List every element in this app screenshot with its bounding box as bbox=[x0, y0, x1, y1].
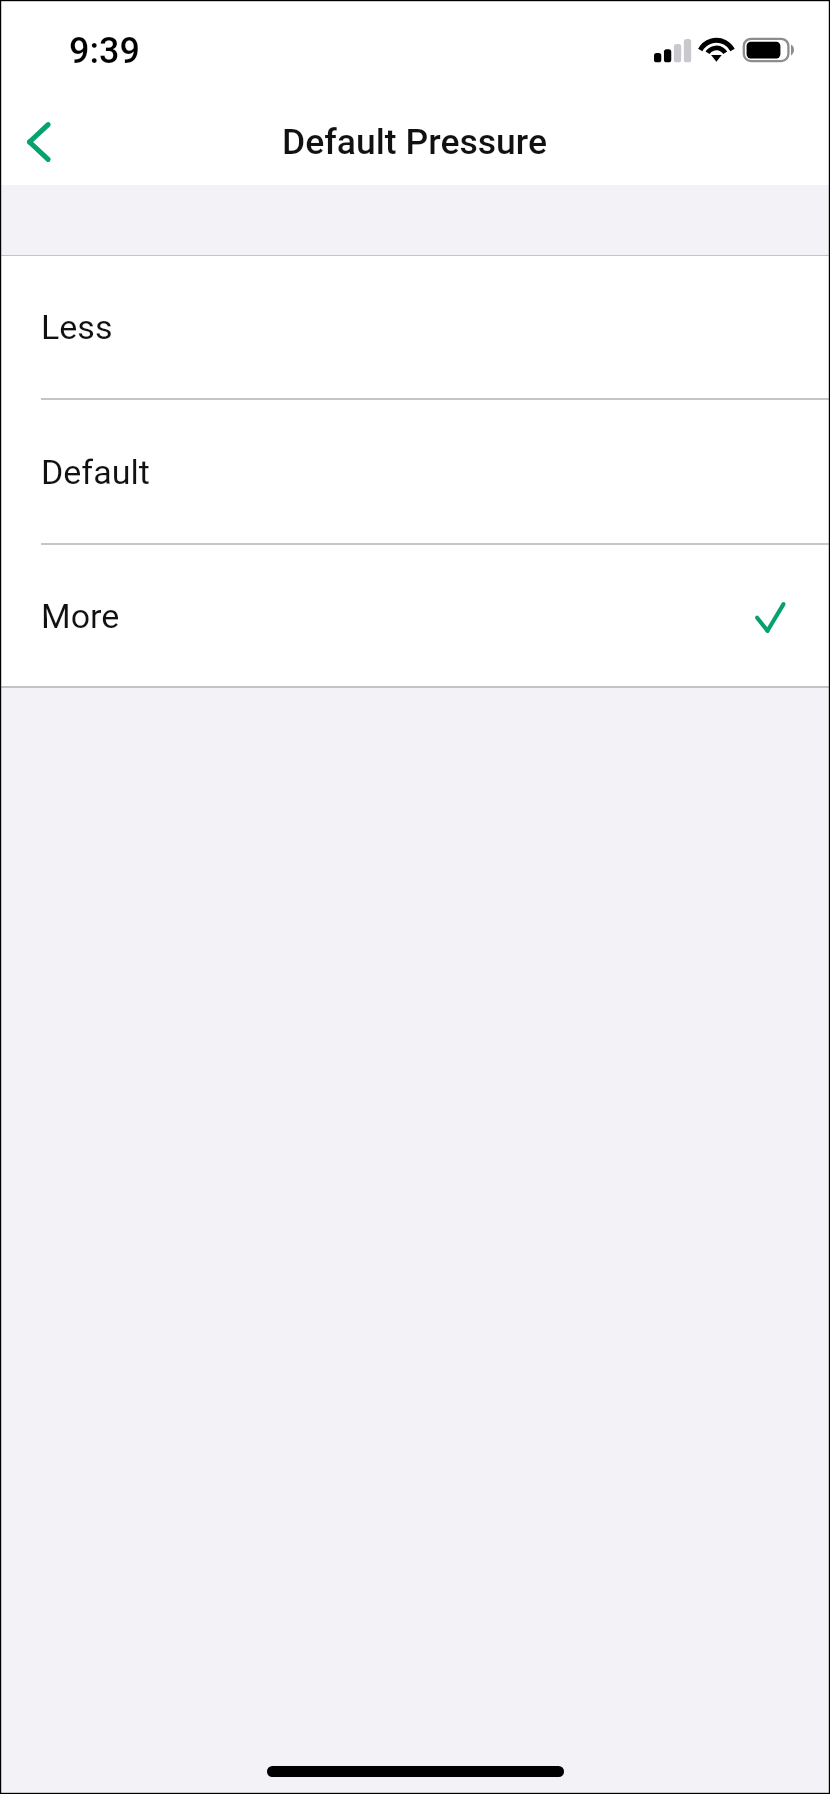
button[interactable]: Less bbox=[0, 256, 830, 398]
button[interactable]: Back bbox=[2, 87, 76, 183]
staticText: Default Pressure bbox=[282, 121, 548, 163]
staticText: Less bbox=[41, 307, 113, 347]
staticText: 9:39 bbox=[69, 30, 140, 72]
staticText: More bbox=[41, 596, 120, 636]
staticText: Default bbox=[41, 452, 150, 492]
button[interactable]: More bbox=[0, 545, 830, 687]
button[interactable]: Default bbox=[0, 400, 830, 543]
